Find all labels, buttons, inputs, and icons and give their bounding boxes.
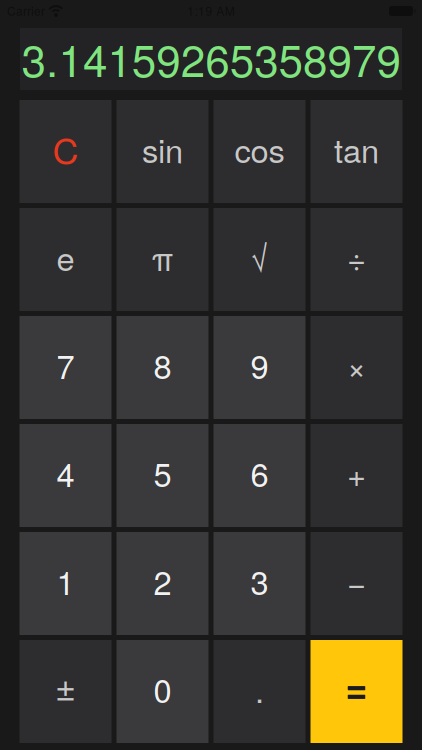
button[interactable]: π (116, 208, 208, 311)
staticText: 3.14159265358979 (22, 26, 400, 89)
staticText: cos (234, 126, 284, 172)
button[interactable]: 8 (116, 316, 208, 419)
button[interactable]: equals (310, 640, 402, 743)
staticText: . (255, 666, 264, 712)
button[interactable]: cos (213, 100, 305, 203)
button[interactable]: − (310, 532, 402, 635)
button[interactable]: 1 (19, 532, 111, 635)
button[interactable]: 0 (116, 640, 208, 743)
staticText: 8 (153, 342, 171, 388)
button[interactable]: √ (213, 208, 305, 311)
staticText: 3 (250, 558, 268, 604)
staticText: ± (55, 659, 76, 711)
button[interactable]: 9 (213, 316, 305, 419)
button[interactable]: e (19, 208, 111, 311)
staticText: 0 (153, 666, 171, 712)
button[interactable]: 5 (116, 424, 208, 527)
staticText: 9 (250, 342, 268, 388)
staticText: π (151, 234, 173, 280)
button[interactable]: . (213, 640, 305, 743)
staticText: e (56, 234, 74, 280)
staticText: 4 (56, 450, 74, 496)
staticText: C (52, 123, 78, 175)
button[interactable]: 4 (19, 424, 111, 527)
staticText: + (347, 450, 366, 496)
button[interactable]: 7 (19, 316, 111, 419)
button[interactable]: 2 (116, 532, 208, 635)
staticText: − (347, 558, 366, 604)
button[interactable]: × (310, 316, 402, 419)
button[interactable]: tan (310, 100, 402, 203)
staticText: sin (142, 126, 183, 172)
staticText: 5 (153, 450, 171, 496)
staticText: 2 (153, 558, 171, 604)
staticText: 1 (56, 558, 74, 604)
staticText: 7 (56, 342, 74, 388)
staticText: ÷ (347, 234, 366, 280)
staticText: × (347, 342, 366, 388)
button[interactable]: ÷ (310, 208, 402, 311)
staticText: tan (334, 126, 379, 172)
button[interactable]: ± (19, 640, 111, 743)
staticText: √ (250, 234, 268, 280)
button[interactable]: sin (116, 100, 208, 203)
button[interactable]: + (310, 424, 402, 527)
staticText: 6 (250, 450, 268, 496)
button[interactable]: C (19, 100, 111, 203)
button[interactable]: 3 (213, 532, 305, 635)
button[interactable]: 6 (213, 424, 305, 527)
staticText: Carrier (7, 2, 45, 19)
